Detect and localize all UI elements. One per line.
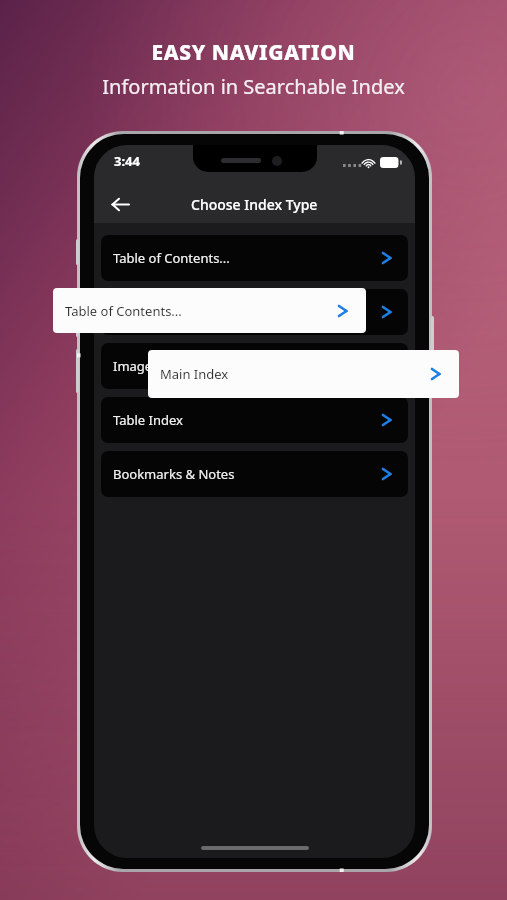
button[interactable]: Bookmarks & Notes	[101, 451, 408, 497]
staticText: Information in Searchable Index	[102, 73, 405, 100]
button[interactable]	[101, 289, 408, 335]
staticText: Table Index	[113, 411, 183, 429]
staticText: 3:44	[114, 152, 140, 170]
button[interactable]: Image Index	[101, 343, 408, 389]
staticText: Table of Contents...	[65, 302, 182, 320]
staticText: Image Index	[113, 357, 190, 375]
staticText: Bookmarks & Notes	[113, 465, 235, 483]
staticText: Main Index	[160, 365, 229, 383]
staticText: Choose Index Type	[191, 195, 318, 214]
button[interactable]: Back	[102, 186, 138, 222]
button[interactable]: Table of Contents...	[53, 288, 366, 333]
button[interactable]: Table of Contents...	[101, 235, 408, 281]
button[interactable]: Table Index	[101, 397, 408, 443]
staticText: Table of Contents...	[113, 249, 230, 267]
button[interactable]: Main Index	[148, 350, 459, 398]
staticText: EASY NAVIGATION	[151, 38, 356, 67]
